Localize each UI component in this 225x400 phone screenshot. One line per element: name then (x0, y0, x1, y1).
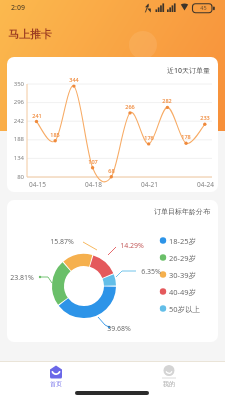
staticText: 266 (125, 103, 135, 110)
staticText: 296 (13, 98, 24, 106)
staticText: 39.68% (107, 324, 131, 334)
staticText: 188 (13, 135, 24, 143)
staticText: 134 (13, 154, 24, 162)
staticText: 40-49岁 (169, 287, 197, 297)
staticText: 68 (108, 167, 115, 174)
staticText: 马上推卡 (8, 27, 52, 41)
staticText: 23.81% (10, 273, 34, 283)
staticText: 04-24 (197, 180, 214, 189)
staticText: 107 (88, 158, 98, 165)
staticText: 15.87% (50, 237, 74, 247)
staticText: 30-39岁 (169, 270, 197, 280)
staticText: 80 (17, 173, 24, 181)
staticText: 18-25岁 (169, 236, 197, 246)
staticText: 首页 (50, 380, 62, 388)
staticText: 241 (32, 112, 42, 119)
staticText: 我的 (163, 380, 175, 388)
staticText: 45 (200, 4, 207, 11)
staticText: 282 (162, 97, 172, 104)
staticText: 178 (181, 133, 191, 140)
staticText: 6.35% (141, 267, 161, 277)
staticText: 185 (50, 131, 60, 138)
staticText: 233 (200, 114, 210, 121)
staticText: 50岁以上 (169, 304, 201, 314)
staticText: 26-29岁 (169, 253, 197, 263)
staticText: 04-15 (29, 180, 46, 189)
staticText: 2:09 (11, 3, 25, 13)
staticText: 04-21 (141, 180, 158, 189)
staticText: 近10天订单量 (166, 66, 210, 76)
button[interactable]: 我的 (112, 361, 225, 400)
staticText: 14.29% (120, 241, 144, 251)
staticText: 04-18 (85, 180, 102, 189)
staticText: 350 (13, 80, 24, 88)
staticText: 订单目标年龄分布 (154, 207, 210, 216)
staticText: 176 (144, 134, 154, 141)
button[interactable]: 首页 (0, 361, 112, 400)
staticText: 344 (69, 76, 79, 83)
staticText: 242 (13, 117, 24, 125)
